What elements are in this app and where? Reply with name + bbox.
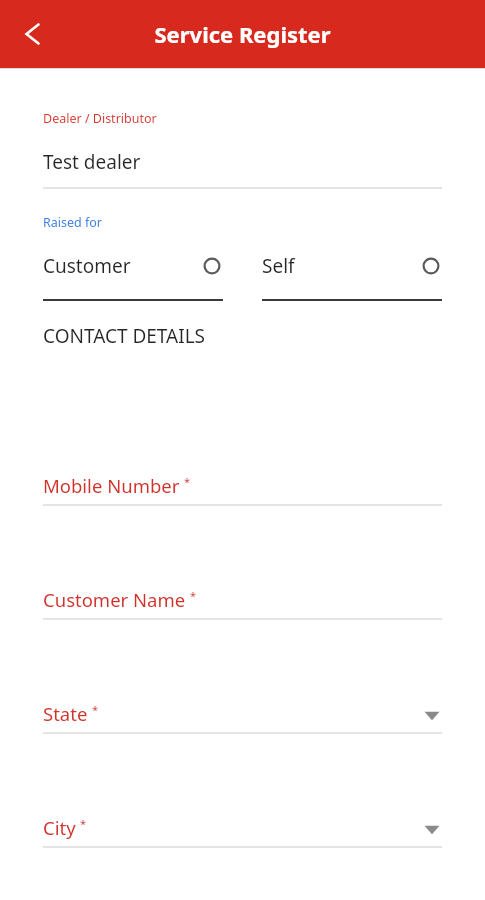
- staticText: *: [92, 702, 99, 717]
- button[interactable]: State: [43, 638, 442, 752]
- staticText: *: [190, 588, 197, 603]
- button[interactable]: Self: [262, 253, 442, 301]
- staticText: Customer: [43, 253, 131, 279]
- staticText: Mobile Number: [43, 473, 180, 498]
- staticText: *: [80, 816, 87, 831]
- button[interactable]: Customer Name: [43, 524, 442, 638]
- button[interactable]: City: [43, 752, 442, 866]
- staticText: Customer Name: [43, 587, 186, 612]
- staticText: Raised for: [43, 214, 103, 231]
- staticText: Self: [262, 253, 295, 279]
- button[interactable]: Test dealer: [43, 149, 442, 175]
- staticText: City: [43, 815, 76, 840]
- staticText: Service Register: [154, 19, 331, 49]
- staticText: *: [184, 474, 191, 489]
- staticText: CONTACT DETAILS: [43, 323, 206, 349]
- button[interactable]: Mobile Number: [43, 410, 442, 524]
- button[interactable]: Customer: [43, 253, 223, 301]
- staticText: Test dealer: [43, 149, 141, 175]
- button[interactable]: Back: [12, 16, 48, 52]
- staticText: State: [43, 701, 88, 726]
- staticText: Dealer / Distributor: [43, 110, 157, 127]
